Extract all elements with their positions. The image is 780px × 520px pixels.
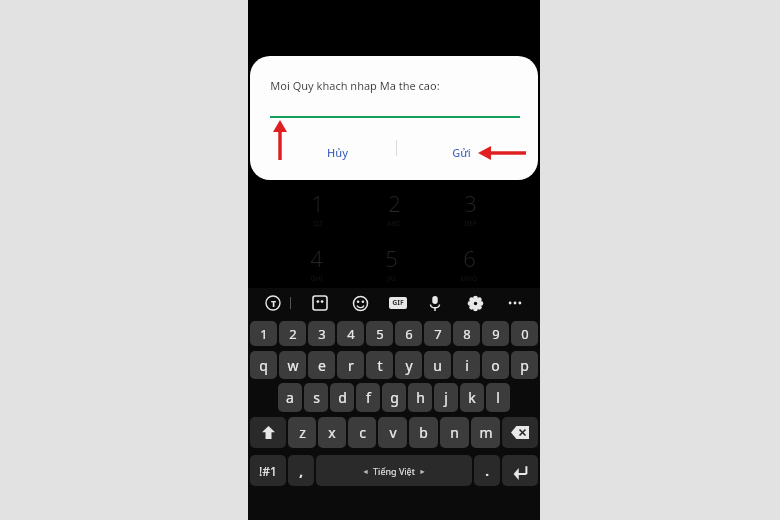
- staticText: c: [359, 423, 366, 442]
- staticText: k: [468, 388, 476, 407]
- button[interactable]: v: [378, 417, 407, 448]
- button[interactable]: 5: [366, 321, 393, 346]
- button[interactable]: t: [366, 351, 393, 379]
- button[interactable]: q: [250, 351, 277, 379]
- button[interactable]: l: [486, 383, 510, 412]
- staticText: 5: [385, 243, 398, 273]
- staticText: e: [318, 356, 326, 375]
- staticText: .: [485, 462, 489, 480]
- button[interactable]: Stickers: [309, 292, 331, 314]
- button[interactable]: a: [278, 383, 302, 412]
- button[interactable]: .: [474, 455, 500, 486]
- button[interactable]: i: [453, 351, 480, 379]
- staticText: 1: [260, 325, 268, 343]
- staticText: h: [416, 388, 425, 407]
- staticText: ◂: [363, 467, 368, 476]
- button[interactable]: 6: [395, 321, 422, 346]
- button[interactable]: d: [330, 383, 354, 412]
- staticText: QZ: [313, 219, 323, 229]
- staticText: x: [328, 423, 336, 442]
- button[interactable]: Enter: [502, 455, 538, 486]
- staticText: m: [479, 423, 493, 442]
- button[interactable]: j: [434, 383, 458, 412]
- staticText: o: [491, 356, 500, 375]
- button[interactable]: Shift: [250, 417, 286, 448]
- button[interactable]: m: [471, 417, 500, 448]
- button[interactable]: 3: [308, 321, 335, 346]
- staticText: Tiếng Việt: [373, 465, 415, 477]
- button[interactable]: h: [408, 383, 432, 412]
- staticText: 4: [310, 243, 323, 273]
- button[interactable]: Gửi: [436, 140, 486, 164]
- button[interactable]: Voice input: [424, 292, 446, 314]
- button[interactable]: ◂: [316, 455, 472, 486]
- staticText: T: [271, 298, 276, 309]
- button[interactable]: 4: [337, 321, 364, 346]
- staticText: 4: [347, 325, 355, 343]
- staticText: ▸: [420, 467, 425, 476]
- staticText: r: [348, 356, 354, 375]
- button[interactable]: 0: [511, 321, 538, 346]
- button[interactable]: More options: [504, 292, 526, 314]
- button[interactable]: w: [279, 351, 306, 379]
- staticText: ,: [299, 462, 303, 480]
- staticText: j: [444, 388, 448, 407]
- button[interactable]: u: [424, 351, 451, 379]
- staticText: !#1: [259, 463, 277, 479]
- staticText: g: [390, 388, 399, 407]
- staticText: 3: [318, 325, 326, 343]
- staticText: i: [465, 356, 469, 375]
- staticText: 6: [405, 325, 413, 343]
- button[interactable]: g: [382, 383, 406, 412]
- staticText: a: [286, 388, 294, 407]
- button[interactable]: Translate: [262, 292, 284, 314]
- staticText: 2: [289, 325, 297, 343]
- button[interactable]: n: [440, 417, 469, 448]
- staticText: 3: [464, 188, 477, 218]
- button[interactable]: e: [308, 351, 335, 379]
- button[interactable]: ,: [288, 455, 314, 486]
- staticText: DEF: [464, 219, 477, 229]
- button[interactable]: f: [356, 383, 380, 412]
- staticText: f: [366, 388, 371, 407]
- button[interactable]: Backspace: [502, 417, 538, 448]
- button[interactable]: r: [337, 351, 364, 379]
- staticText: Moi Quy khach nhap Ma the cao:: [270, 78, 440, 93]
- button[interactable]: 7: [424, 321, 451, 346]
- staticText: 9: [492, 325, 500, 343]
- staticText: 0: [521, 325, 529, 343]
- button[interactable]: o: [482, 351, 509, 379]
- staticText: 8: [463, 325, 471, 343]
- staticText: p: [520, 356, 529, 375]
- staticText: d: [338, 388, 347, 407]
- staticText: GHI: [310, 274, 323, 284]
- staticText: t: [377, 356, 383, 375]
- staticText: 6: [463, 243, 476, 273]
- staticText: q: [259, 356, 268, 375]
- button[interactable]: y: [395, 351, 422, 379]
- staticText: GIF: [392, 298, 404, 308]
- button[interactable]: Settings: [464, 292, 486, 314]
- staticText: 7: [434, 325, 442, 343]
- button[interactable]: 2: [279, 321, 306, 346]
- staticText: y: [405, 356, 413, 375]
- button[interactable]: c: [348, 417, 376, 448]
- staticText: b: [419, 423, 428, 442]
- button[interactable]: GIF: [389, 297, 407, 309]
- button[interactable]: x: [318, 417, 346, 448]
- button[interactable]: 8: [453, 321, 480, 346]
- button[interactable]: s: [304, 383, 328, 412]
- button[interactable]: k: [460, 383, 484, 412]
- staticText: 5: [376, 325, 384, 343]
- button[interactable]: p: [511, 351, 538, 379]
- button[interactable]: b: [409, 417, 438, 448]
- button[interactable]: Emoji: [349, 292, 371, 314]
- button[interactable]: z: [288, 417, 316, 448]
- staticText: z: [299, 423, 306, 442]
- button[interactable]: 9: [482, 321, 509, 346]
- staticText: 2: [388, 188, 401, 218]
- button[interactable]: !#1: [250, 455, 286, 486]
- staticText: u: [433, 356, 442, 375]
- button[interactable]: Hủy: [308, 140, 366, 164]
- button[interactable]: 1: [250, 321, 277, 346]
